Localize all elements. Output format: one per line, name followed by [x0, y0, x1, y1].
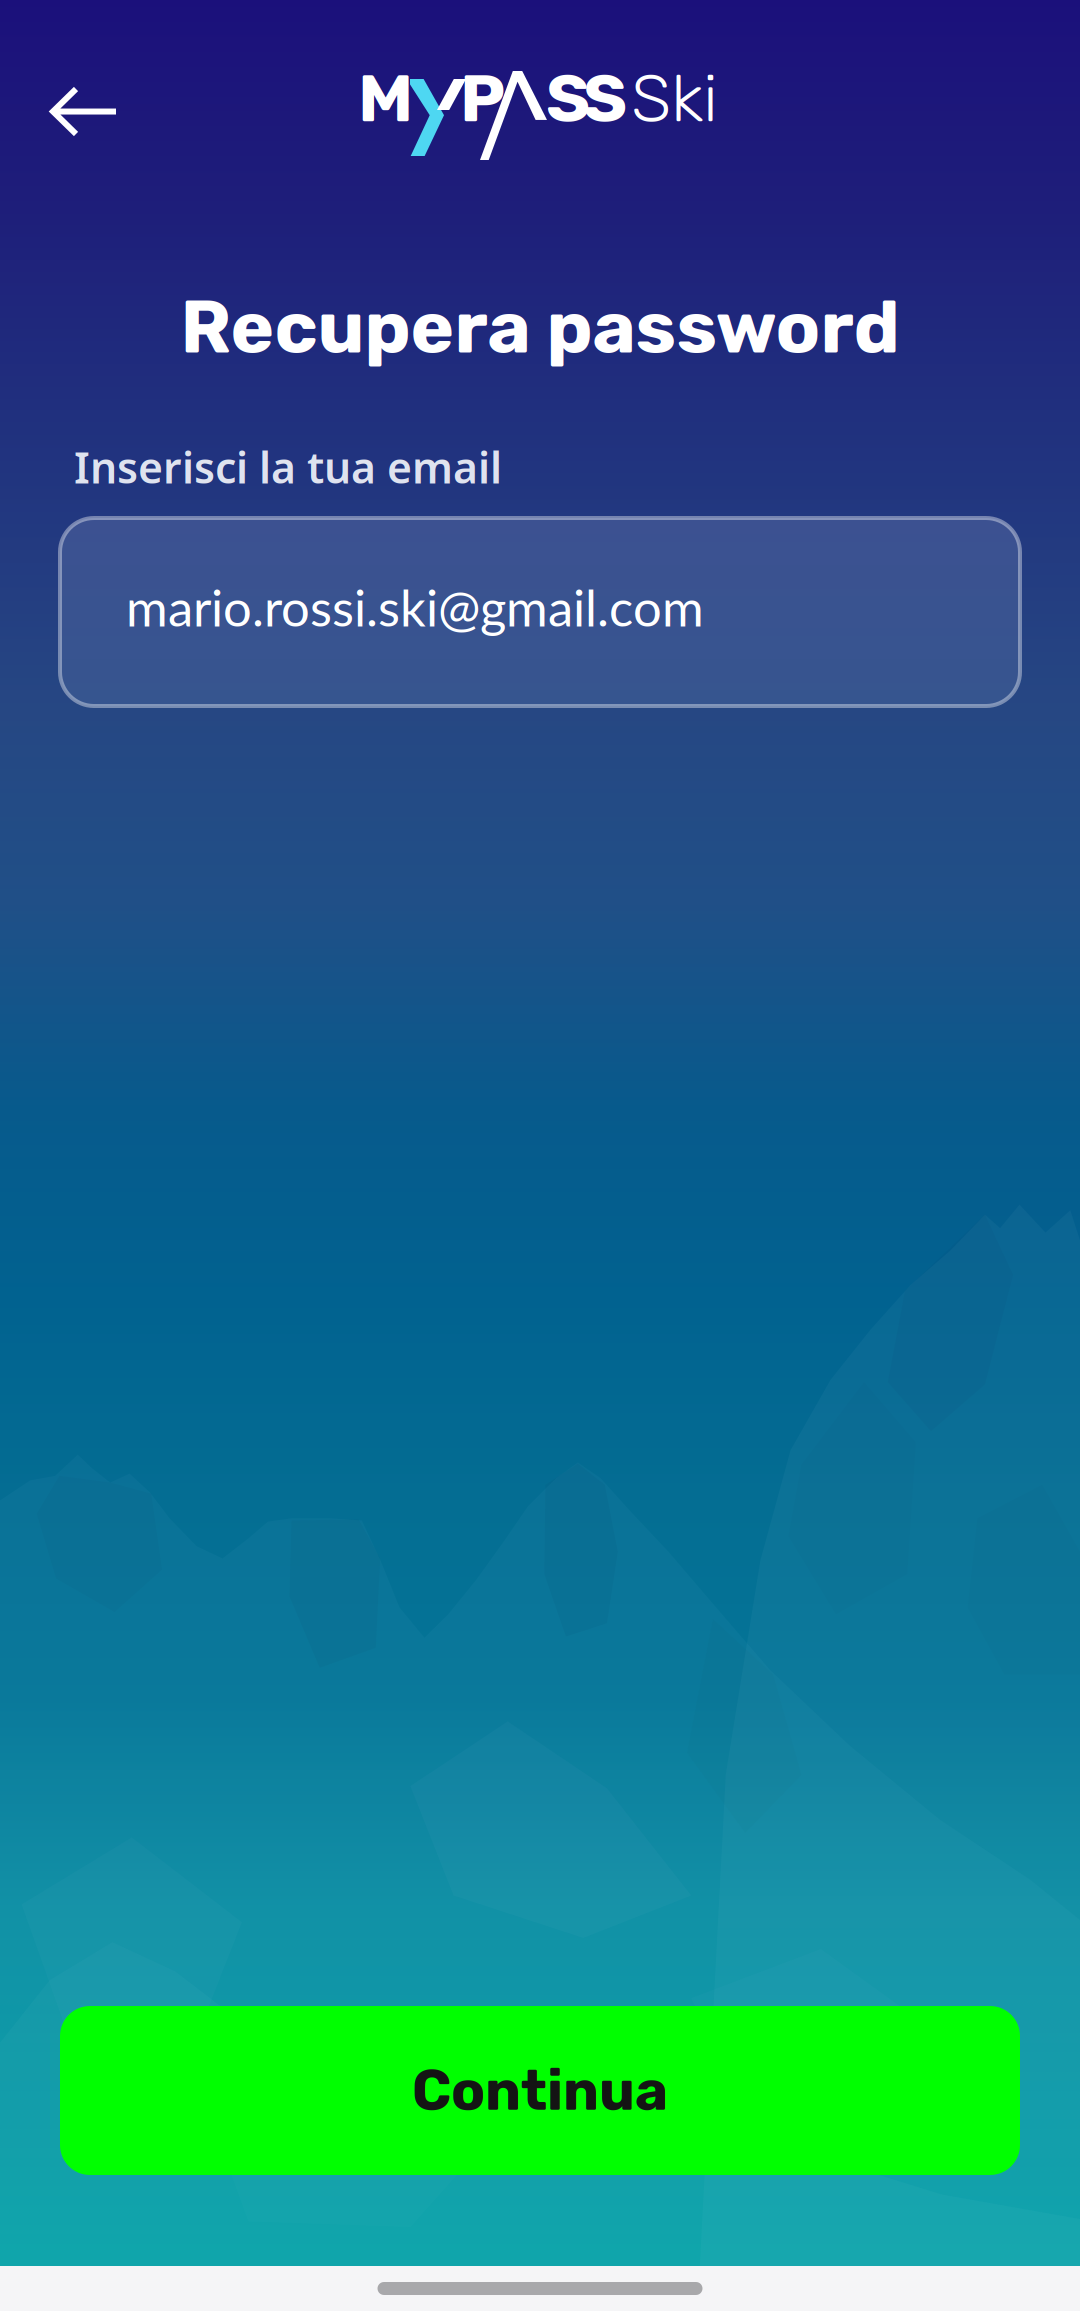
- staticText: S: [546, 59, 590, 138]
- staticText: P: [460, 59, 505, 138]
- staticText: Continua: [412, 2057, 668, 2124]
- staticText: Recupera password: [180, 284, 899, 371]
- staticText: Inserisci la tua email: [74, 438, 502, 496]
- button[interactable]: Back: [0, 57, 146, 166]
- staticText: mario.rossi.ski@gmail.com: [126, 577, 704, 637]
- staticText: S: [583, 59, 627, 138]
- staticText: M: [358, 59, 413, 138]
- button[interactable]: Continua: [60, 2006, 1020, 2175]
- staticText: Ski: [631, 59, 718, 138]
